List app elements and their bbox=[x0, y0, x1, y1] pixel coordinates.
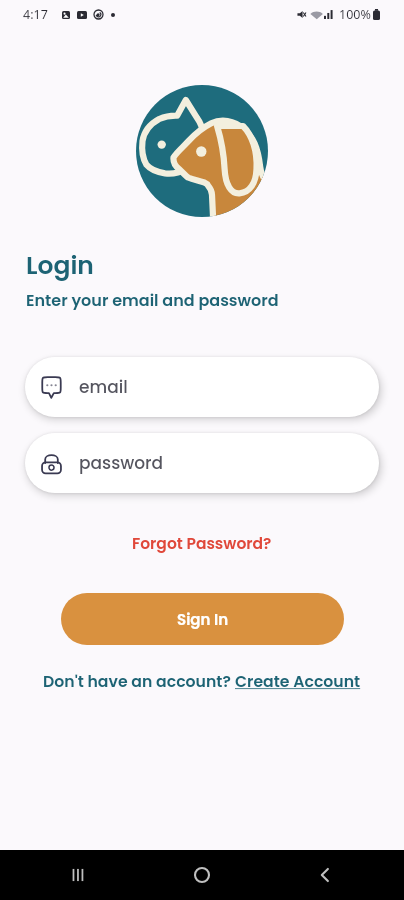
button[interactable]: Forgot Password? bbox=[124, 529, 280, 559]
button[interactable]: Sign In bbox=[61, 593, 344, 645]
staticText: Enter your email and password bbox=[26, 289, 279, 311]
staticText: Create Account bbox=[235, 671, 361, 693]
button[interactable]: email bbox=[25, 357, 379, 417]
button[interactable]: Home bbox=[181, 854, 223, 896]
staticText: 100% bbox=[339, 6, 371, 23]
staticText: password bbox=[79, 451, 164, 475]
staticText: Forgot Password? bbox=[132, 533, 272, 555]
staticText: Sign In bbox=[177, 609, 229, 630]
staticText: 4:17 bbox=[23, 6, 48, 23]
button[interactable]: password bbox=[25, 433, 379, 493]
staticText: Login bbox=[26, 248, 94, 283]
button[interactable]: Recents bbox=[58, 854, 100, 896]
staticText: email bbox=[79, 375, 128, 399]
staticText: Don't have an account? bbox=[43, 671, 235, 693]
button[interactable]: Create Account bbox=[235, 671, 361, 693]
button[interactable]: Back bbox=[304, 854, 346, 896]
